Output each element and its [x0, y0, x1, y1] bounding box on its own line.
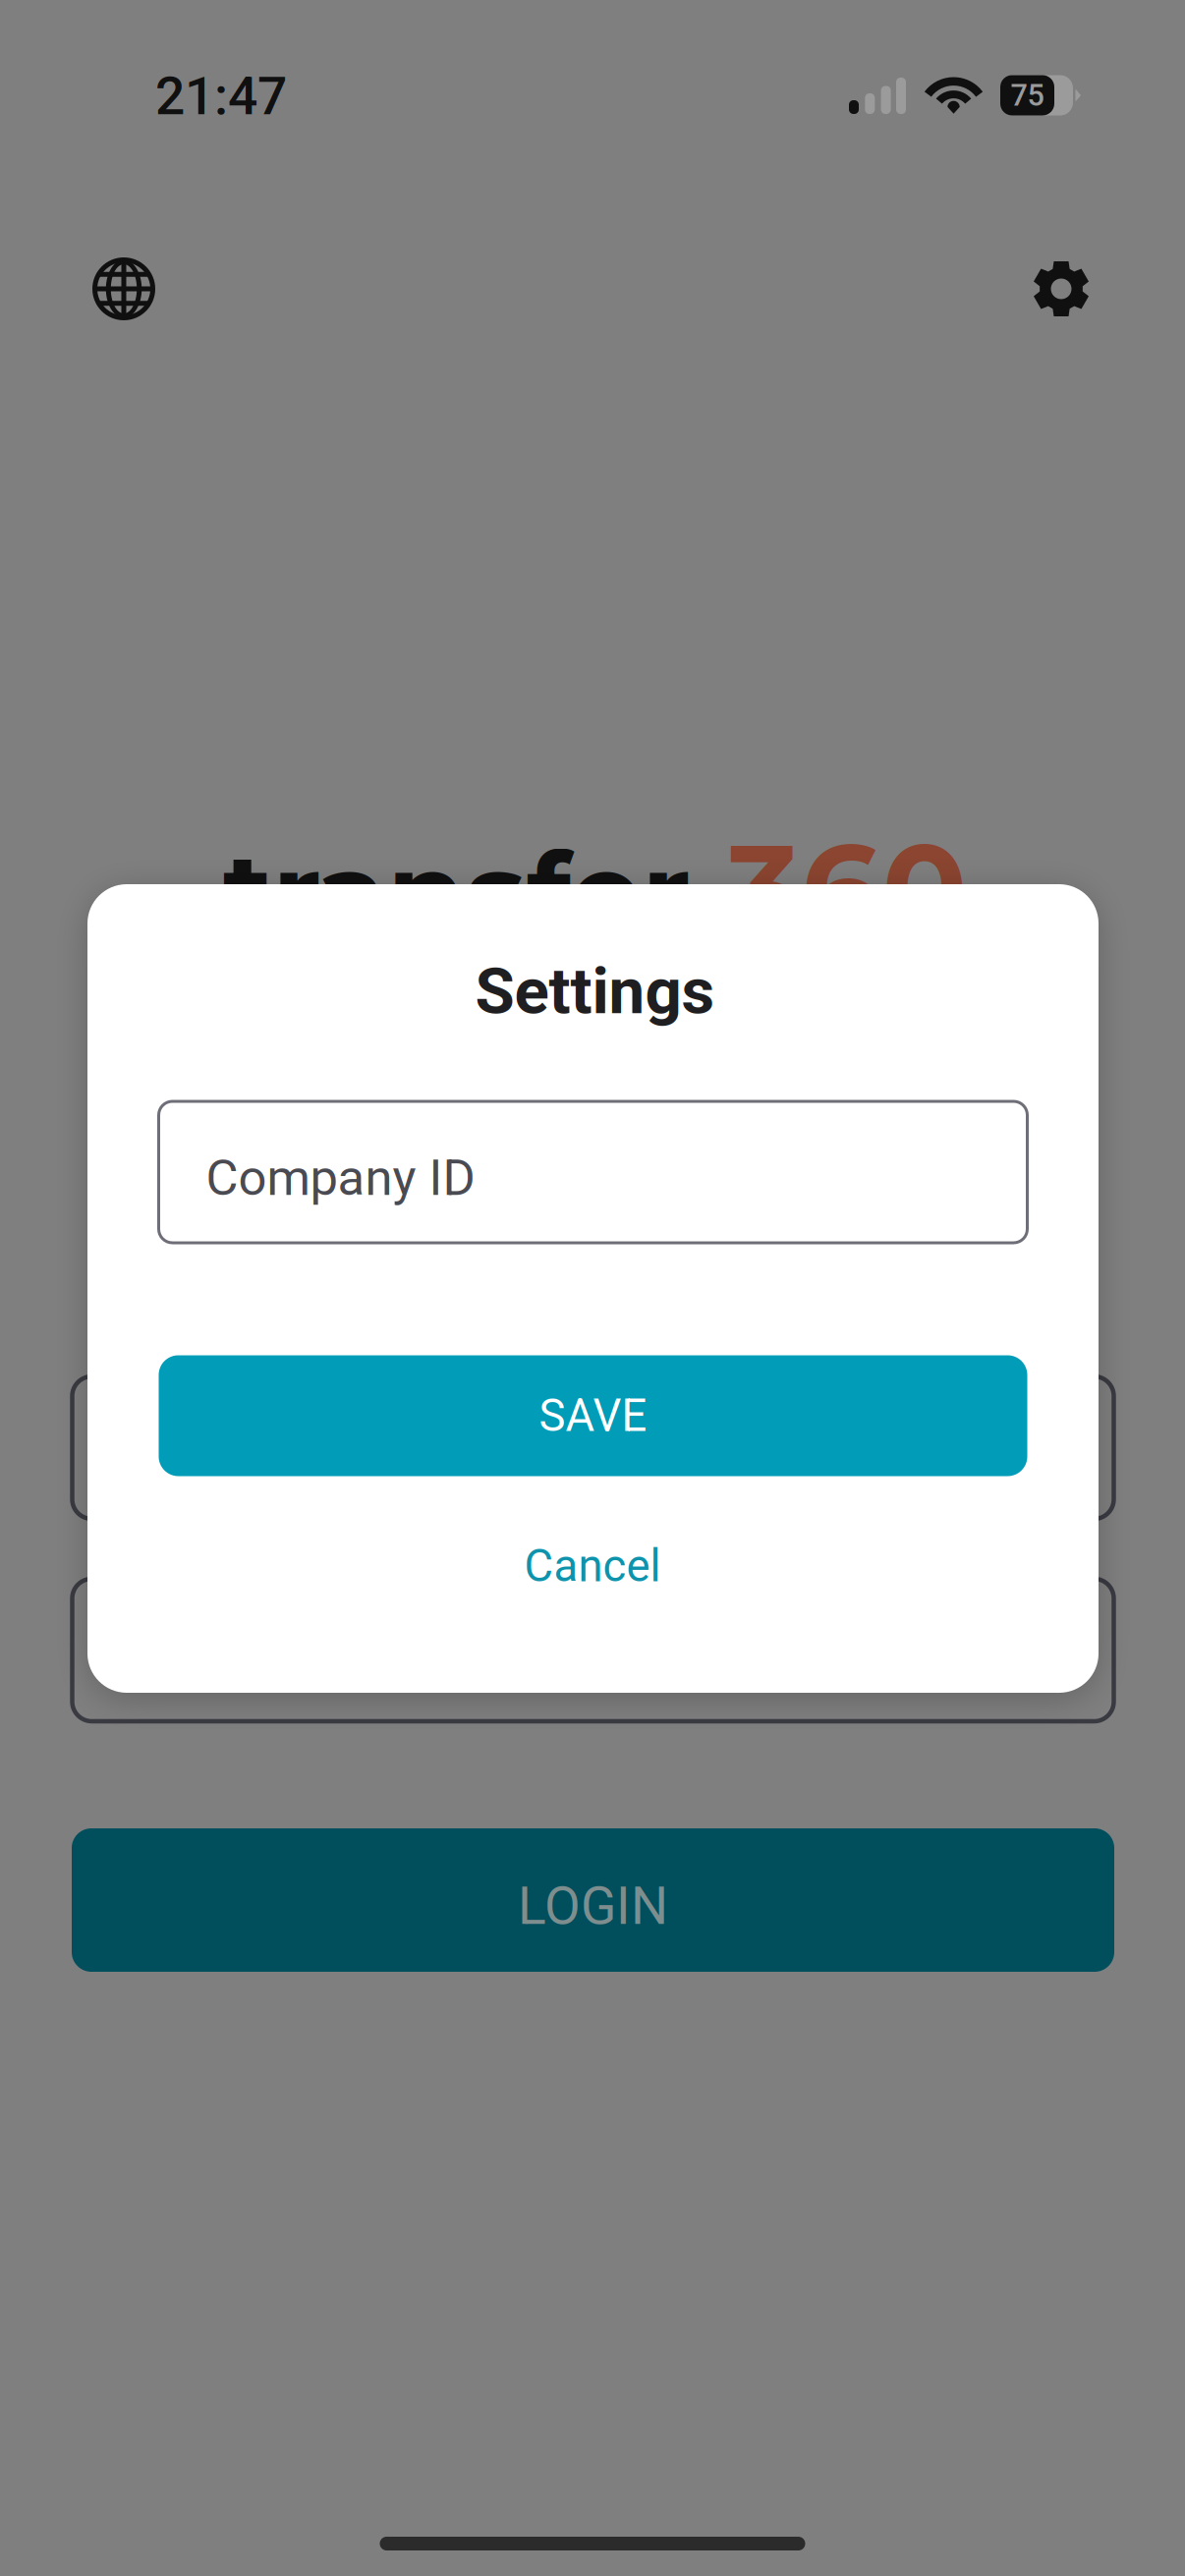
staticText: Settings: [475, 954, 715, 1029]
staticText: transfer: [223, 824, 691, 963]
staticText: Company ID: [206, 1149, 475, 1207]
button[interactable]: Language: [65, 230, 183, 348]
staticText: 360: [727, 812, 967, 965]
staticText: SAVE: [539, 1390, 647, 1442]
staticText: 21:47: [155, 66, 287, 127]
staticText: Cancel: [524, 1540, 661, 1592]
button[interactable]: SAVE: [159, 1355, 1027, 1476]
button[interactable]: Settings: [1002, 230, 1120, 348]
staticText: LOGIN: [518, 1875, 668, 1937]
button[interactable]: LOGIN: [72, 1828, 1114, 1972]
button[interactable]: Cancel: [158, 1519, 1027, 1613]
staticText: 75: [1011, 78, 1044, 113]
